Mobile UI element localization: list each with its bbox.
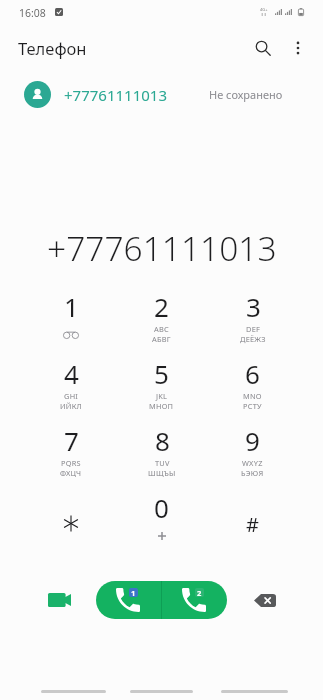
button[interactable]: 0 [116, 482, 207, 538]
staticText: GHI [64, 391, 79, 401]
staticText: 4G+ [260, 7, 268, 12]
staticText: Телефон [18, 37, 87, 59]
button[interactable]: 8 [116, 415, 207, 482]
button[interactable]: 1 [25, 281, 116, 348]
staticText: TUV [155, 458, 170, 468]
staticText: МНОП [149, 401, 174, 411]
button[interactable]: 3 [207, 281, 298, 348]
button[interactable]: Call with SIM 1 [96, 581, 161, 619]
staticText: ИЙКЛ [60, 401, 82, 411]
button[interactable]: +77761111013 [0, 74, 323, 115]
button[interactable]: 4 [25, 348, 116, 415]
staticText: WXYZ [242, 458, 263, 468]
button[interactable]: Delete [245, 580, 285, 620]
staticText: ШЩЪЫ [148, 468, 176, 478]
staticText: 1 [64, 289, 79, 324]
staticText: 8 [155, 423, 170, 458]
button[interactable]: # [207, 482, 298, 538]
staticText: 2 [154, 289, 169, 324]
staticText: MNO [243, 391, 262, 401]
button[interactable]: 7 [25, 415, 116, 482]
staticText: +77761111013 [64, 85, 167, 105]
staticText: JKL [156, 391, 168, 401]
staticText: DEF [246, 324, 261, 334]
staticText: ABC [154, 324, 169, 334]
staticText: 5 [154, 356, 169, 391]
button[interactable]: Call with SIM 2 [162, 581, 227, 619]
staticText: 1 [131, 588, 136, 597]
staticText: 16:08 [19, 6, 46, 20]
button[interactable] [25, 482, 116, 538]
button[interactable]: 2 [116, 281, 207, 348]
staticText: +77761111013 [47, 225, 277, 271]
button[interactable]: Search [245, 30, 281, 66]
staticText: 0 [154, 490, 169, 525]
button[interactable]: 9 [207, 415, 298, 482]
staticText: 7 [64, 423, 79, 458]
staticText: ФХЦЧ [60, 468, 82, 478]
staticText: 9 [245, 423, 260, 458]
staticText: АБВГ [152, 334, 171, 344]
button[interactable]: Back [221, 682, 288, 700]
staticText: PQRS [61, 458, 81, 468]
staticText: # [246, 511, 259, 538]
staticText: Не сохранено [209, 87, 283, 102]
staticText: 6 [245, 356, 260, 391]
staticText: 3 [246, 289, 261, 324]
button[interactable]: Home [130, 682, 193, 700]
button[interactable]: 6 [207, 348, 298, 415]
button[interactable]: Video call [39, 580, 79, 620]
staticText: 4 [64, 356, 79, 391]
staticText: РСТУ [243, 401, 262, 411]
button[interactable]: Recent apps [41, 682, 106, 700]
staticText: ДЕЁЖЗ [240, 334, 266, 344]
staticText: ЬЭЮЯ [241, 468, 264, 478]
staticText: 2 [197, 588, 202, 597]
button[interactable]: 5 [116, 348, 207, 415]
button[interactable]: More options [280, 30, 316, 66]
